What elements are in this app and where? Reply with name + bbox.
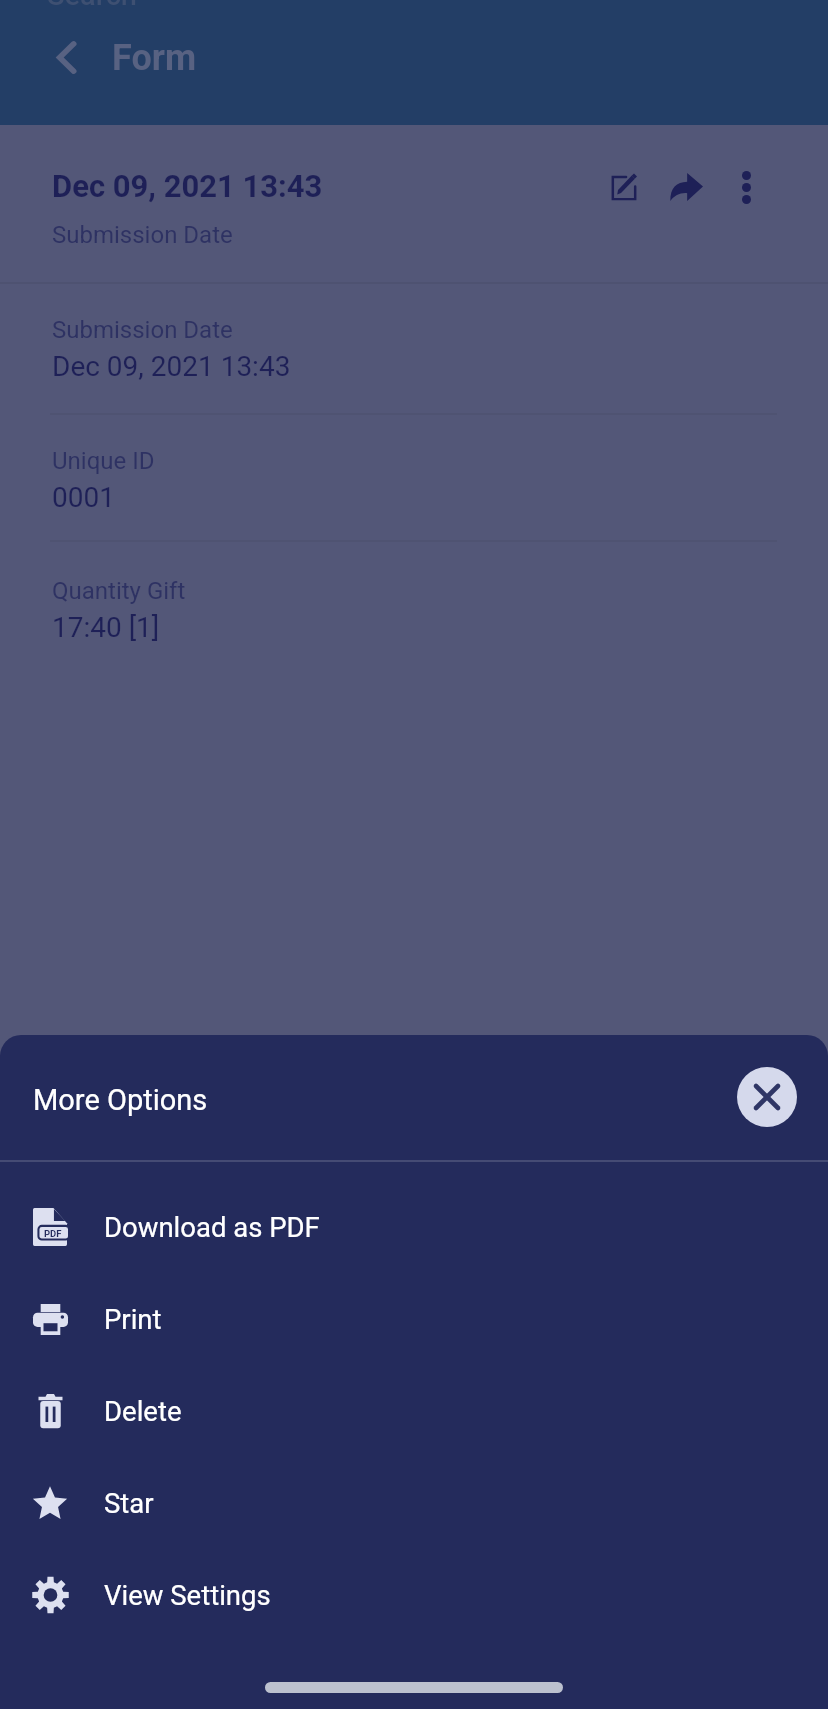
button[interactable]: Close xyxy=(737,1067,797,1127)
staticText: Submission Date xyxy=(52,316,233,344)
staticText: Print xyxy=(104,1303,162,1335)
button[interactable]: Star xyxy=(0,1457,828,1549)
button[interactable]: Back xyxy=(30,26,102,88)
staticText: Download as PDF xyxy=(104,1211,320,1243)
button[interactable]: Delete xyxy=(0,1365,828,1457)
staticText: Search xyxy=(47,0,137,12)
staticText: Quantity Gift xyxy=(52,577,186,605)
button[interactable]: Share xyxy=(662,163,710,211)
button[interactable]: Edit xyxy=(600,163,648,211)
staticText: Dec 09, 2021 13:43 xyxy=(52,350,291,383)
staticText: 0001 xyxy=(52,481,115,514)
button[interactable]: More options xyxy=(722,163,770,211)
staticText: More Options xyxy=(33,1083,208,1117)
staticText: Delete xyxy=(104,1395,182,1427)
button[interactable]: PDF xyxy=(0,1181,828,1273)
staticText: Form xyxy=(112,37,197,79)
button[interactable]: Print xyxy=(0,1273,828,1365)
staticText: View Settings xyxy=(104,1579,271,1611)
staticText: Submission Date xyxy=(52,221,233,249)
staticText: Star xyxy=(104,1487,154,1519)
staticText: PDF xyxy=(44,1228,62,1239)
staticText: Dec 09, 2021 13:43 xyxy=(52,168,323,204)
staticText: 17:40 [1] xyxy=(52,611,160,644)
button[interactable]: View Settings xyxy=(0,1549,828,1641)
staticText: Unique ID xyxy=(52,447,155,475)
